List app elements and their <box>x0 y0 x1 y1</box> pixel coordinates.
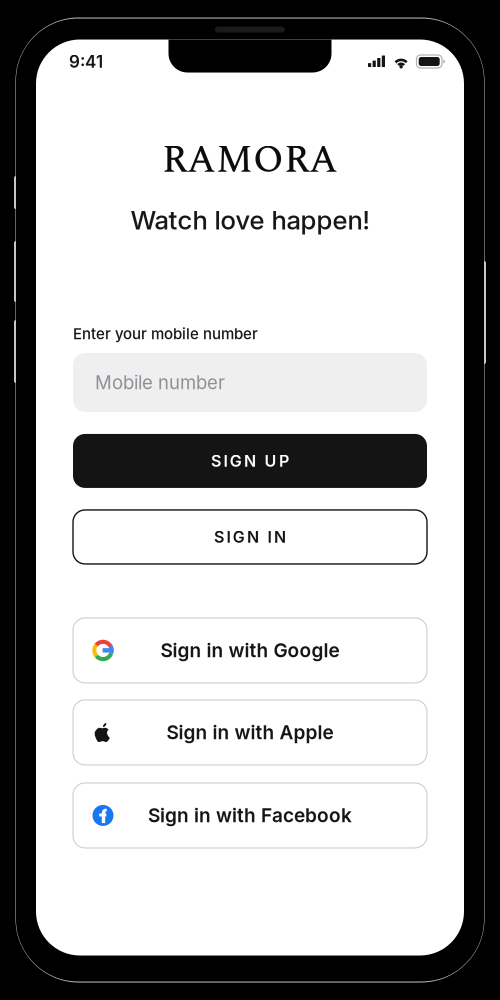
staticText: Mobile number <box>95 371 225 394</box>
staticText: Sign in with Apple <box>166 721 333 744</box>
staticText: RAMORA <box>162 131 338 189</box>
staticText: Sign in with Google <box>160 639 339 662</box>
staticText: SIGN UP <box>211 451 289 471</box>
staticText: Sign in with Facebook <box>148 804 352 827</box>
staticText: 9:41 <box>69 51 103 72</box>
button[interactable]: SIGN IN <box>73 510 427 564</box>
button[interactable]: Sign in with Apple <box>73 700 427 765</box>
button[interactable]: Sign in with Google <box>73 618 427 683</box>
staticText: Watch love happen! <box>130 204 369 236</box>
staticText: Enter your mobile number <box>73 325 258 343</box>
button[interactable]: Sign in with Facebook <box>73 783 427 848</box>
staticText: SIGN IN <box>214 527 286 547</box>
button[interactable]: SIGN UP <box>73 434 427 488</box>
